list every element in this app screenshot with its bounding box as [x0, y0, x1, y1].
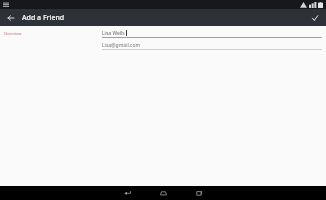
staticText: Lisa@gmail.com: [102, 42, 141, 49]
staticText: Add a Friend: [22, 13, 65, 23]
button[interactable]: Recent apps: [181, 186, 217, 200]
button[interactable]: Home: [145, 186, 181, 200]
button[interactable]: Lisa Wells: [102, 29, 322, 38]
button[interactable]: Back: [109, 186, 145, 200]
staticText: Overview: [4, 31, 22, 36]
button[interactable]: Done: [304, 9, 326, 26]
button[interactable]: Back: [0, 9, 22, 26]
staticText: Lisa Wells: [102, 30, 125, 37]
button[interactable]: Lisa@gmail.com: [102, 41, 322, 50]
